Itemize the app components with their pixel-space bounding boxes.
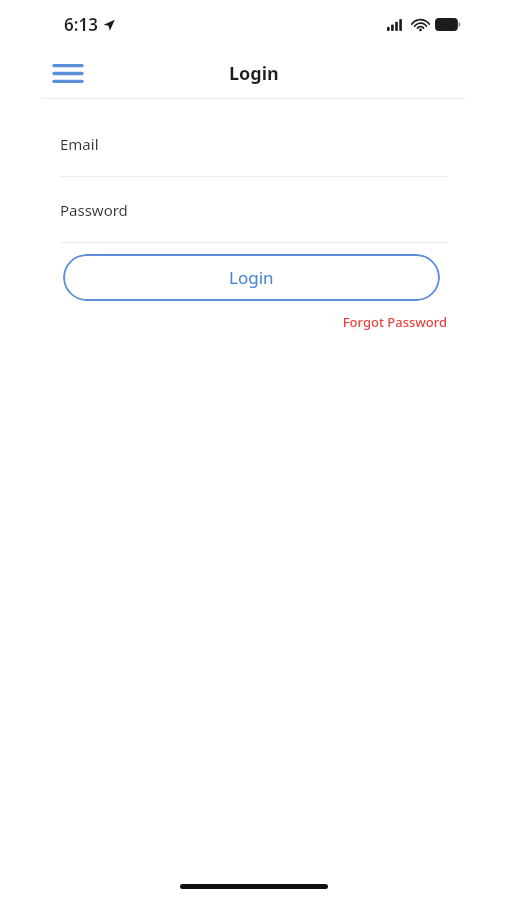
button[interactable]: Forgot Password (340, 311, 449, 333)
staticText: Login (229, 61, 279, 86)
staticText: Login (229, 266, 274, 289)
button[interactable]: Email (0, 111, 507, 176)
button[interactable]: Login (63, 254, 440, 301)
staticText: Email (60, 134, 99, 154)
button[interactable]: Open navigation menu (48, 56, 88, 90)
staticText: 6:13 (64, 13, 98, 36)
button[interactable]: Password (0, 177, 507, 242)
staticText: Forgot Password (342, 313, 447, 331)
staticText: Password (60, 200, 128, 220)
